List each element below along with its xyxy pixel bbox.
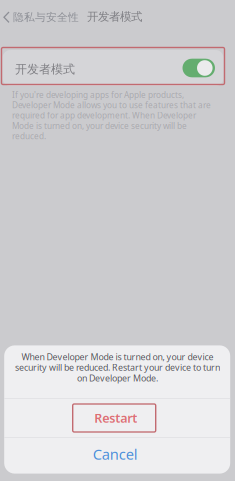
staticText: If you're developing apps for Apple prod… [12,89,211,141]
staticText: 开发者模式 [15,62,75,77]
staticText: 开发者模式 [87,9,142,24]
button[interactable]: Cancel [4,438,230,474]
staticText: Cancel [93,444,138,464]
button[interactable]: 隐私与安全性 [0,6,84,28]
staticText: When Developer Mode is turned on, your d… [15,351,220,383]
staticText: Restart [94,409,137,427]
staticText: 隐私与安全性 [13,10,79,24]
button[interactable]: Restart [4,399,230,437]
